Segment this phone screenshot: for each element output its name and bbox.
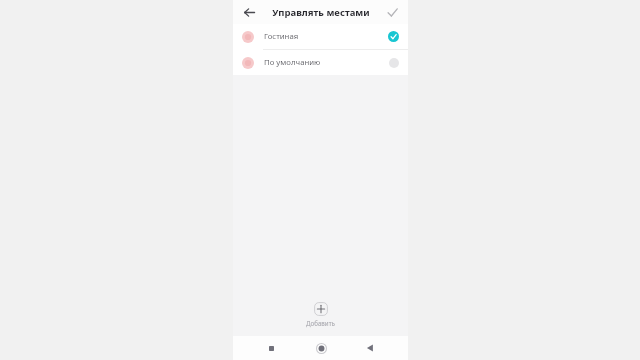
button[interactable]: Добавить	[292, 300, 349, 329]
staticText: Добавить	[306, 319, 335, 327]
staticText: Гостиная	[264, 31, 388, 42]
button[interactable]: Back	[359, 337, 381, 359]
button[interactable]: Back	[239, 2, 259, 22]
staticText: Управлять местами	[272, 6, 370, 19]
staticText: По умолчанию	[264, 57, 388, 68]
button[interactable]: По умолчанию	[233, 50, 408, 75]
button[interactable]: Home	[310, 337, 332, 359]
button[interactable]: Recent apps	[260, 337, 282, 359]
button[interactable]: Гостиная	[233, 24, 408, 49]
button[interactable]: Confirm	[382, 2, 402, 22]
